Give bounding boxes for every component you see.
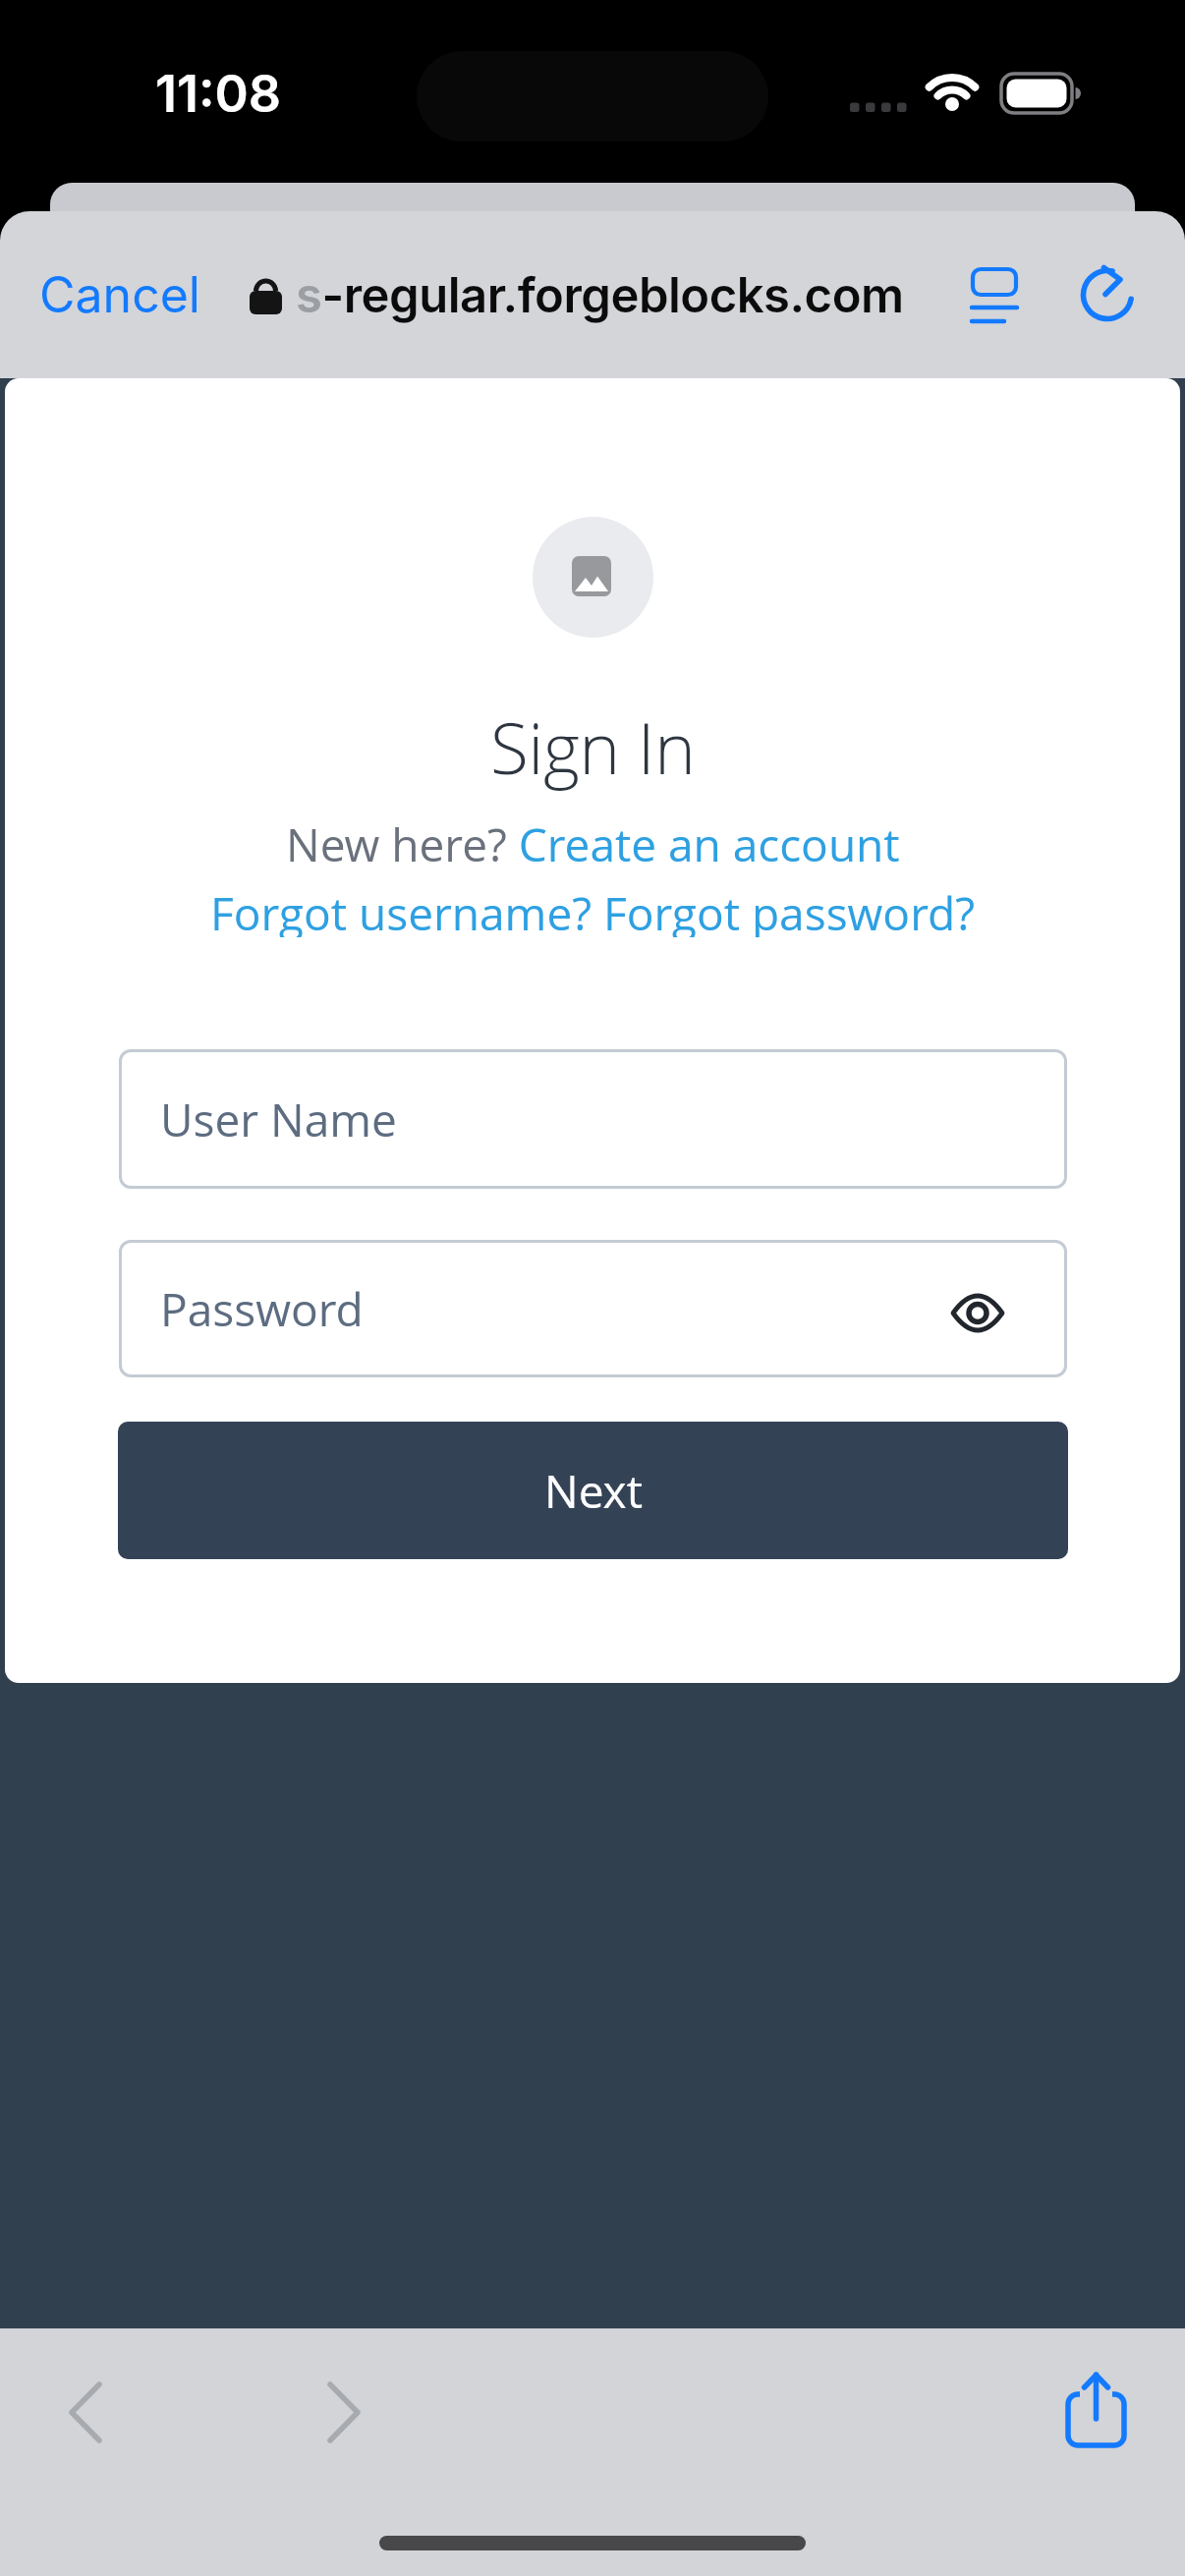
button[interactable]: New here? Create an account — [286, 813, 900, 872]
staticText: Sign In — [490, 700, 696, 795]
button[interactable]: User Name — [119, 1049, 1067, 1189]
button[interactable] — [938, 1262, 1037, 1361]
button[interactable] — [1042, 2358, 1159, 2476]
button[interactable] — [29, 2358, 147, 2476]
button[interactable] — [290, 2358, 408, 2476]
staticText: s-regular.forgeblocks.com — [296, 266, 904, 324]
button[interactable]: Next — [118, 1422, 1068, 1559]
button[interactable] — [1071, 251, 1159, 339]
staticText: Cancel — [39, 265, 200, 324]
staticText: Next — [544, 1460, 643, 1522]
button[interactable]: Forgot username? Forgot password? — [210, 882, 975, 937]
button[interactable] — [953, 251, 1042, 339]
staticText: 11:08 — [155, 63, 282, 125]
staticText: Password — [160, 1278, 364, 1340]
button[interactable]: Cancel — [39, 251, 334, 339]
staticText: User Name — [160, 1089, 397, 1150]
button[interactable]: Password — [119, 1240, 1067, 1377]
